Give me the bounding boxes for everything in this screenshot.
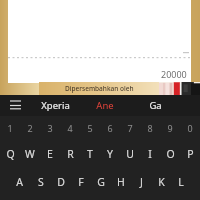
- staticText: 1: [7, 122, 13, 134]
- staticText: Ane: [96, 99, 114, 112]
- staticText: U: [126, 147, 134, 161]
- staticText: R: [67, 147, 74, 161]
- button[interactable]: 9: [160, 116, 180, 140]
- staticText: W: [25, 147, 35, 161]
- button[interactable]: Xperia: [30, 95, 81, 116]
- button[interactable]: Ga: [129, 95, 182, 116]
- button[interactable]: R: [60, 140, 80, 168]
- staticText: 4: [67, 122, 73, 134]
- button[interactable]: O: [160, 140, 180, 168]
- staticText: 7: [127, 122, 133, 134]
- staticText: K: [158, 175, 165, 189]
- staticText: 3: [47, 122, 53, 134]
- staticText: Xperia: [41, 99, 70, 112]
- button[interactable]: 3: [40, 116, 60, 140]
- button[interactable]: A: [9, 168, 30, 196]
- button[interactable]: Keyboard options: [0, 95, 30, 116]
- button[interactable]: S: [30, 168, 51, 196]
- button[interactable]: I: [140, 140, 160, 168]
- staticText: I: [148, 147, 152, 161]
- button[interactable]: 1: [0, 116, 20, 140]
- button[interactable]: D: [51, 168, 71, 196]
- staticText: 2: [27, 122, 33, 134]
- button[interactable]: Dipersembahkan oleh: [0, 82, 200, 95]
- button[interactable]: U: [120, 140, 140, 168]
- staticText: F: [78, 175, 84, 189]
- staticText: 9: [167, 122, 173, 134]
- staticText: T: [87, 147, 93, 161]
- button[interactable]: Y: [100, 140, 120, 168]
- button[interactable]: 7: [120, 116, 140, 140]
- staticText: Q: [6, 147, 15, 161]
- button[interactable]: Ane: [81, 95, 129, 116]
- staticText: Dipersembahkan oleh: [65, 84, 134, 93]
- button[interactable]: 0: [180, 116, 200, 140]
- other: Advertisement: [159, 82, 200, 95]
- staticText: Y: [107, 147, 113, 161]
- staticText: 6: [107, 122, 113, 134]
- button[interactable]: H: [111, 168, 131, 196]
- button[interactable]: E: [40, 140, 60, 168]
- staticText: A: [16, 175, 23, 189]
- staticText: 5: [87, 122, 93, 134]
- button[interactable]: 5: [80, 116, 100, 140]
- button[interactable]: 4: [60, 116, 80, 140]
- button[interactable]: J: [131, 168, 151, 196]
- button[interactable]: 2: [20, 116, 40, 140]
- button[interactable]: K: [151, 168, 171, 196]
- button[interactable]: F: [71, 168, 91, 196]
- staticText: S: [38, 175, 44, 189]
- staticText: H: [117, 175, 125, 189]
- staticText: 0: [187, 122, 193, 134]
- button[interactable]: W: [20, 140, 40, 168]
- staticText: O: [166, 147, 175, 161]
- staticText: L: [178, 175, 184, 189]
- staticText: P: [187, 147, 194, 161]
- button[interactable]: G: [91, 168, 111, 196]
- staticText: J: [140, 175, 143, 189]
- staticText: Ga: [149, 99, 162, 112]
- button[interactable]: L: [171, 168, 191, 196]
- button[interactable]: Q: [0, 140, 20, 168]
- staticText: D: [57, 175, 65, 189]
- staticText: 8: [147, 122, 153, 134]
- button[interactable]: P: [180, 140, 200, 168]
- button[interactable]: T: [80, 140, 100, 168]
- staticText: G: [97, 175, 105, 189]
- staticText: 20000: [161, 68, 187, 80]
- staticText: E: [47, 147, 53, 161]
- button[interactable]: 6: [100, 116, 120, 140]
- button[interactable]: 8: [140, 116, 160, 140]
